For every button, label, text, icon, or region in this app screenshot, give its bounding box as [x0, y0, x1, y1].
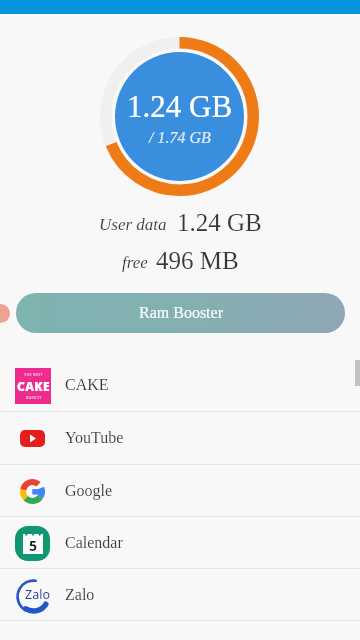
staticText: YouTube — [65, 429, 124, 447]
staticText: Zalo — [65, 586, 95, 604]
staticText: Google — [65, 482, 113, 500]
staticText: User data — [99, 215, 167, 234]
staticText: BAKERY — [26, 395, 42, 400]
staticText: 1.24 GB — [127, 89, 233, 123]
button[interactable]: Google — [0, 465, 360, 517]
button[interactable]: 5 — [0, 517, 360, 569]
staticText: Calendar — [65, 534, 123, 552]
staticText: CAKE — [17, 378, 50, 394]
button[interactable]: Ram Booster — [16, 293, 345, 333]
staticText: CAKE — [65, 376, 109, 394]
staticText: 496 MB — [156, 247, 239, 275]
button[interactable]: THE BEST — [0, 359, 360, 411]
button[interactable]: Zalo — [0, 569, 360, 621]
staticText: Ram Booster — [139, 304, 223, 322]
staticText: THE BEST — [24, 372, 44, 377]
staticText: free — [122, 253, 148, 272]
staticText: 1.24 GB — [177, 209, 262, 237]
button[interactable]: YouTube — [0, 412, 360, 464]
staticText: Zalo — [25, 586, 50, 603]
staticText: 5 — [29, 536, 38, 555]
staticText: / 1.74 GB — [149, 129, 211, 147]
